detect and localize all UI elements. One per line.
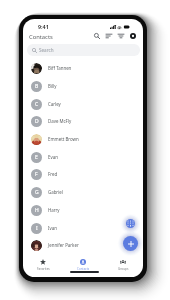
- staticText: Carley: [48, 101, 61, 107]
- staticText: C: [35, 101, 39, 108]
- button[interactable]: C: [23, 95, 143, 113]
- button[interactable]: Emmett Brown: [23, 130, 143, 148]
- staticText: F: [35, 171, 38, 178]
- staticText: E: [35, 154, 38, 161]
- staticText: Billy: [48, 83, 57, 89]
- staticText: H: [35, 207, 39, 214]
- button[interactable]: I: [23, 219, 143, 237]
- button[interactable]: Favorites: [23, 255, 63, 272]
- staticText: Fred: [48, 171, 58, 177]
- staticText: Jennifer Parker: [48, 242, 79, 248]
- staticText: Search: [39, 47, 54, 53]
- button[interactable]: Groups: [103, 255, 143, 272]
- staticText: G: [35, 189, 39, 196]
- button[interactable]: B: [23, 77, 143, 95]
- staticText: Dave McFly: [48, 118, 72, 124]
- button[interactable]: H: [23, 201, 143, 219]
- button[interactable]: Jennifer Parker: [23, 236, 143, 254]
- button[interactable]: Sort: [103, 30, 115, 42]
- staticText: Ivan: [48, 225, 57, 231]
- staticText: D: [35, 118, 39, 125]
- button[interactable]: D: [23, 112, 143, 130]
- staticText: Biff Tannen: [48, 65, 72, 71]
- staticText: Favorites: [37, 267, 50, 271]
- button[interactable]: G: [23, 183, 143, 201]
- staticText: Contacts: [29, 33, 53, 41]
- staticText: B: [35, 83, 39, 90]
- button[interactable]: Search: [27, 44, 140, 56]
- button[interactable]: E: [23, 148, 143, 166]
- staticText: Groups: [118, 267, 129, 271]
- staticText: Contacts: [77, 267, 90, 271]
- button[interactable]: Account: [127, 30, 139, 42]
- button[interactable]: Search: [91, 30, 103, 42]
- button[interactable]: Biff Tannen: [23, 59, 143, 77]
- staticText: Emmett Brown: [48, 136, 79, 142]
- button[interactable]: Filter: [115, 30, 127, 42]
- button[interactable]: F: [23, 165, 143, 183]
- button[interactable]: Add contact: [123, 236, 138, 251]
- button[interactable]: Contacts: [63, 255, 103, 272]
- button[interactable]: Dial pad: [126, 219, 135, 228]
- staticText: Gabriel: [48, 189, 63, 195]
- staticText: 9:41: [38, 23, 49, 30]
- staticText: Evan: [48, 154, 58, 160]
- staticText: Harry: [48, 207, 60, 213]
- staticText: I: [36, 225, 38, 232]
